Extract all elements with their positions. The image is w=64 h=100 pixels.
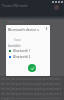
staticText: Bluetooth 1 <box>13 49 31 53</box>
staticText: the last few years because people genera… <box>1 92 61 96</box>
button[interactable]: Bluetooth 2 <box>6 55 50 59</box>
staticText: Scan <box>14 38 21 42</box>
button[interactable]: Connected <box>28 64 36 72</box>
staticText: Available <box>8 44 21 48</box>
staticText: the last few years because people genera… <box>1 97 61 99</box>
staticText: Private DNS mode <box>2 4 28 8</box>
staticText: the last few years because people genera… <box>1 77 61 81</box>
staticText: Bluetooth 2 <box>13 55 31 59</box>
button[interactable]: Bluetooth 1 <box>6 49 50 53</box>
staticText: the last few years because people genera… <box>1 87 61 91</box>
staticText: Bluetooth device s <box>8 27 39 32</box>
staticText: the last few years because people genera… <box>1 82 61 86</box>
